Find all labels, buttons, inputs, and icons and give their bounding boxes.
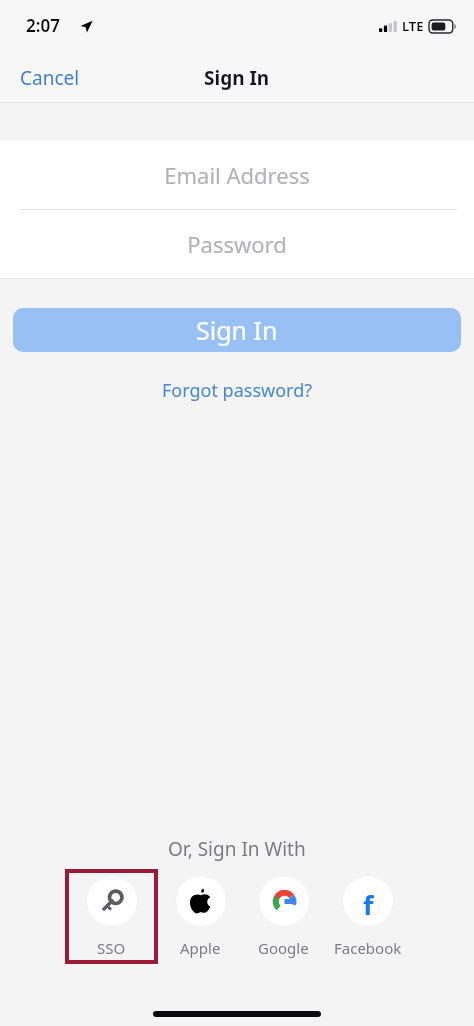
staticText: 2:07 (26, 14, 60, 37)
button[interactable]: Forgot password? (150, 374, 325, 407)
button[interactable]: Email Address (0, 141, 474, 209)
staticText: Facebook (334, 938, 402, 958)
staticText: Cancel (20, 65, 80, 91)
staticText: Sign In (204, 65, 270, 91)
staticText: Email Address (164, 160, 310, 190)
staticText: Google (258, 938, 309, 958)
staticText: Forgot password? (162, 378, 313, 403)
button[interactable]: Password (0, 210, 474, 278)
staticText: Or, Sign In With (168, 836, 306, 862)
button[interactable]: Sign in with Google (242, 869, 325, 964)
staticText: SSO (97, 938, 126, 958)
button[interactable]: Sign in with Facebook (326, 869, 409, 964)
staticText: Sign In (196, 313, 278, 347)
button[interactable]: Cancel (0, 55, 100, 101)
button[interactable]: Sign in with Apple (159, 869, 242, 964)
staticText: LTE (402, 17, 424, 35)
staticText: f (363, 887, 374, 915)
button[interactable]: Sign In (13, 308, 461, 352)
button[interactable]: Sign in with SSO (65, 869, 158, 964)
staticText: Apple (180, 938, 221, 958)
staticText: Password (187, 229, 287, 259)
